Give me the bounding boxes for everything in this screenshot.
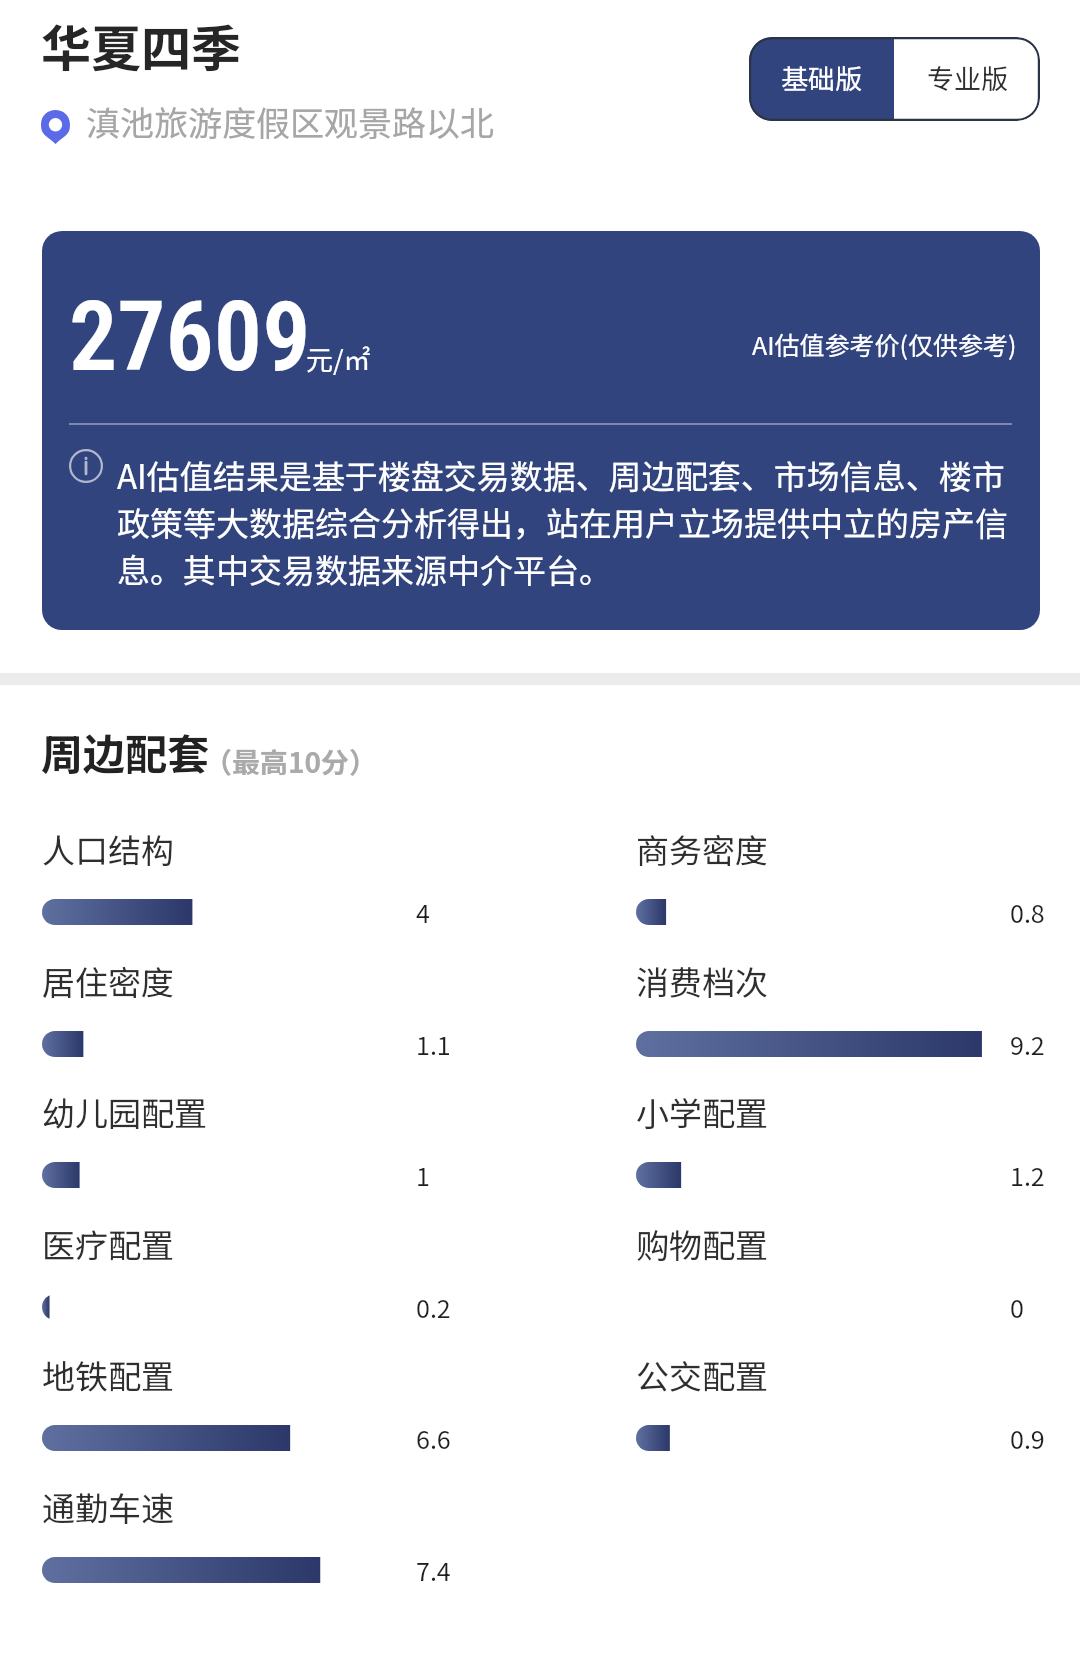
staticText: 人口结构 <box>42 829 174 871</box>
staticText: 7.4 <box>416 1555 451 1587</box>
staticText: 0.8 <box>1010 897 1045 929</box>
staticText: 1 <box>416 1160 430 1192</box>
staticText: 1.1 <box>416 1029 451 1061</box>
button[interactable]: 27609 <box>42 231 1040 630</box>
staticText: 居住密度 <box>42 961 174 1003</box>
staticText: 商务密度 <box>636 829 768 871</box>
button[interactable]: 专业版 <box>894 37 1040 121</box>
staticText: 地铁配置 <box>42 1355 174 1397</box>
staticText: 幼儿园配置 <box>42 1092 207 1134</box>
other: Info <box>69 449 103 483</box>
staticText: AI估值结果是基于楼盘交易数据、周边配套、市场信息、楼市政策等大数据综合分析得出… <box>117 451 1032 592</box>
staticText: 专业版 <box>927 62 1008 96</box>
staticText: （最高10分） <box>204 744 378 780</box>
staticText: 购物配置 <box>636 1224 768 1266</box>
button[interactable]: 基础版 <box>749 37 894 121</box>
staticText: 周边配套 <box>41 726 210 781</box>
staticText: 滇池旅游度假区观景路以北 <box>86 101 494 145</box>
staticText: 1.2 <box>1010 1160 1045 1192</box>
staticText: AI估值参考价(仅供参考) <box>752 329 1017 361</box>
staticText: 公交配置 <box>636 1355 768 1397</box>
staticText: 通勤车速 <box>42 1487 174 1529</box>
staticText: 0.2 <box>416 1292 451 1324</box>
staticText: 0 <box>1010 1292 1024 1324</box>
staticText: 4 <box>416 897 430 929</box>
staticText: 6.6 <box>416 1423 451 1455</box>
staticText: 27609 <box>69 281 311 394</box>
staticText: 消费档次 <box>636 961 768 1003</box>
staticText: 华夏四季 <box>41 15 241 80</box>
staticText: 元/㎡ <box>306 343 371 377</box>
staticText: 9.2 <box>1010 1029 1045 1061</box>
button[interactable]: 滇池旅游度假区观景路以北 <box>36 100 496 150</box>
staticText: 0.9 <box>1010 1423 1045 1455</box>
staticText: 基础版 <box>781 62 862 96</box>
staticText: 小学配置 <box>636 1092 768 1134</box>
staticText: 医疗配置 <box>42 1224 174 1266</box>
